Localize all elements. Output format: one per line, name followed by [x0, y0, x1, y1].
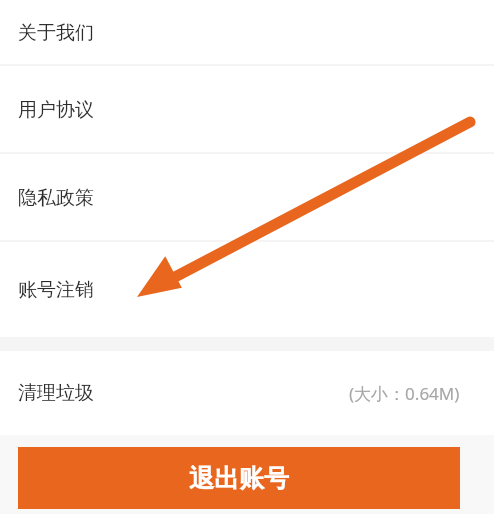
staticText: 隐私政策: [18, 186, 94, 210]
button[interactable]: 用户协议: [0, 66, 494, 154]
button[interactable]: 账号注销: [0, 242, 494, 337]
staticText: (大小：0.64M): [349, 382, 460, 405]
staticText: 账号注销: [18, 278, 94, 302]
other: Annotation arrow: [0, 0, 494, 514]
button[interactable]: 关于我们: [0, 0, 494, 66]
button[interactable]: 隐私政策: [0, 154, 494, 242]
staticText: 清理垃圾: [18, 381, 94, 405]
staticText: 退出账号: [189, 463, 289, 494]
button[interactable]: 清理垃圾: [0, 351, 494, 435]
staticText: 关于我们: [18, 21, 94, 45]
button[interactable]: 退出账号: [18, 447, 460, 509]
staticText: 用户协议: [18, 98, 94, 122]
